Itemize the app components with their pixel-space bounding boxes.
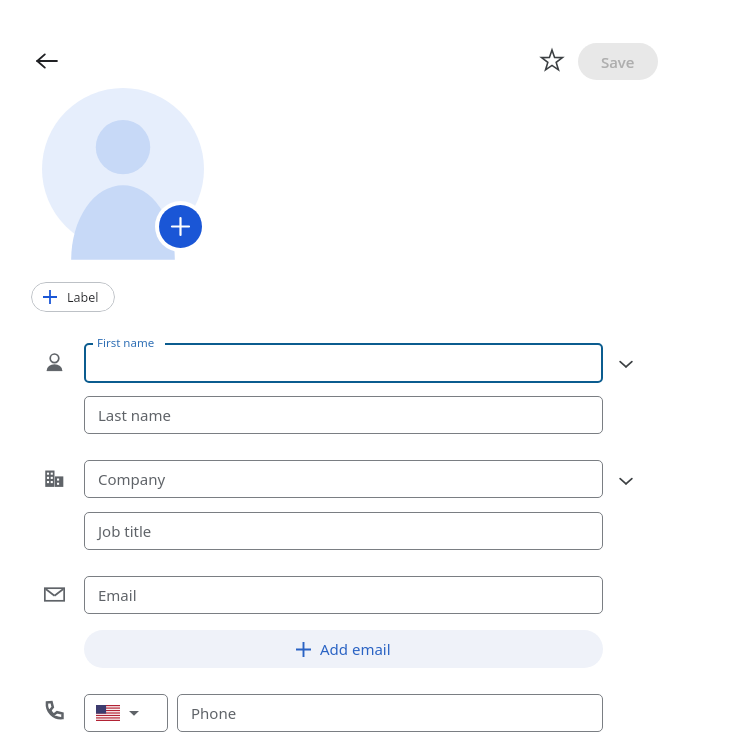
staticText: Email [98, 585, 137, 605]
button[interactable] [84, 343, 603, 383]
button[interactable]: Expand [615, 470, 637, 492]
button[interactable]: Job title [84, 512, 603, 550]
staticText: Phone [191, 703, 237, 723]
staticText: Job title [98, 521, 152, 541]
button[interactable]: Add email [84, 630, 603, 668]
button[interactable]: Label [31, 282, 115, 312]
staticText: Add email [320, 639, 391, 659]
button[interactable]: Company [84, 460, 603, 498]
button[interactable]: Save [578, 43, 658, 80]
staticText: First name [97, 335, 155, 351]
button[interactable]: Email [84, 576, 603, 614]
button[interactable]: Add photo [159, 205, 202, 248]
button[interactable]: Phone [177, 694, 603, 732]
staticText: Save [601, 52, 635, 72]
staticText: Company [98, 469, 166, 489]
button[interactable]: Expand [615, 353, 637, 375]
button[interactable]: Favorite [531, 40, 573, 82]
button[interactable]: Back [26, 40, 68, 82]
button[interactable]: Select country code [84, 694, 168, 732]
button[interactable]: Last name [84, 396, 603, 434]
staticText: Label [67, 289, 99, 306]
staticText: Last name [98, 405, 171, 425]
